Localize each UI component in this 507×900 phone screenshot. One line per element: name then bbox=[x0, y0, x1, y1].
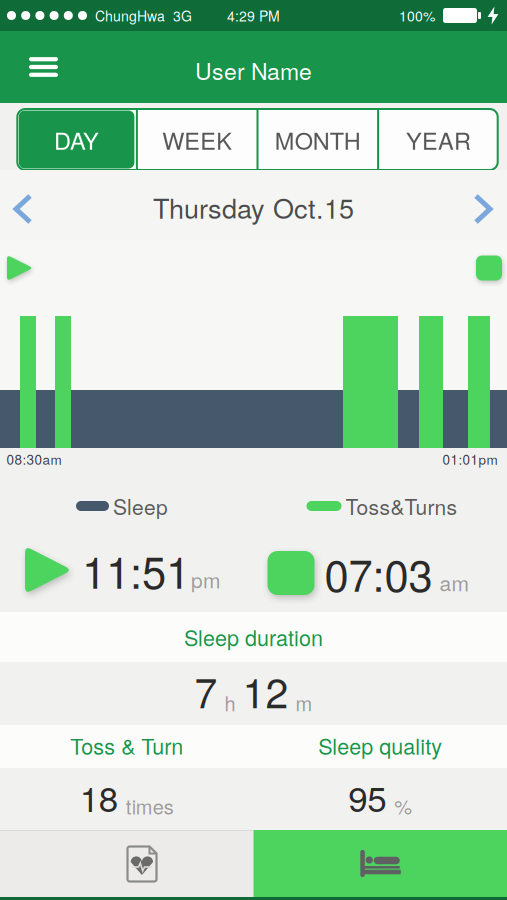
button[interactable]: YEAR bbox=[379, 109, 498, 170]
button[interactable]: Health report bbox=[0, 830, 253, 897]
staticText: MONTH bbox=[275, 123, 361, 156]
staticText: am bbox=[439, 567, 468, 597]
staticText: 7 bbox=[194, 661, 217, 720]
staticText: DAY bbox=[54, 123, 99, 156]
button[interactable]: WEEK bbox=[138, 109, 256, 170]
staticText: h bbox=[224, 688, 235, 717]
staticText: ChungHwa 3G bbox=[95, 5, 192, 25]
staticText: % bbox=[394, 791, 412, 820]
button[interactable]: DAY bbox=[17, 109, 136, 170]
button[interactable]: Previous day bbox=[6, 188, 40, 230]
button[interactable]: MONTH bbox=[258, 109, 377, 170]
staticText: times bbox=[126, 791, 174, 820]
staticText: m bbox=[295, 688, 312, 717]
staticText: 11:51 bbox=[82, 539, 190, 601]
staticText: 12 bbox=[242, 661, 288, 720]
staticText: 18 bbox=[80, 772, 118, 822]
staticText: 100% bbox=[399, 5, 435, 25]
staticText: 4:29 PM bbox=[227, 5, 280, 25]
button[interactable]: Menu bbox=[19, 49, 68, 85]
staticText: 01:01pm bbox=[442, 449, 497, 469]
staticText: Sleep quality bbox=[318, 730, 442, 761]
staticText: 08:30am bbox=[6, 449, 61, 469]
staticText: Toss & Turn bbox=[70, 730, 183, 761]
staticText: Toss&Turns bbox=[345, 491, 457, 521]
staticText: User Name bbox=[195, 53, 312, 86]
staticText: Sleep duration bbox=[184, 622, 323, 652]
staticText: 95 bbox=[348, 772, 386, 822]
button[interactable]: Sleep bbox=[253, 830, 507, 897]
staticText: 07:03 bbox=[324, 542, 432, 604]
staticText: YEAR bbox=[406, 123, 471, 156]
staticText: Sleep bbox=[113, 491, 168, 521]
staticText: Thursday Oct.15 bbox=[153, 188, 354, 226]
button[interactable]: Next day bbox=[466, 188, 500, 230]
staticText: pm bbox=[191, 564, 220, 594]
staticText: WEEK bbox=[162, 123, 232, 156]
